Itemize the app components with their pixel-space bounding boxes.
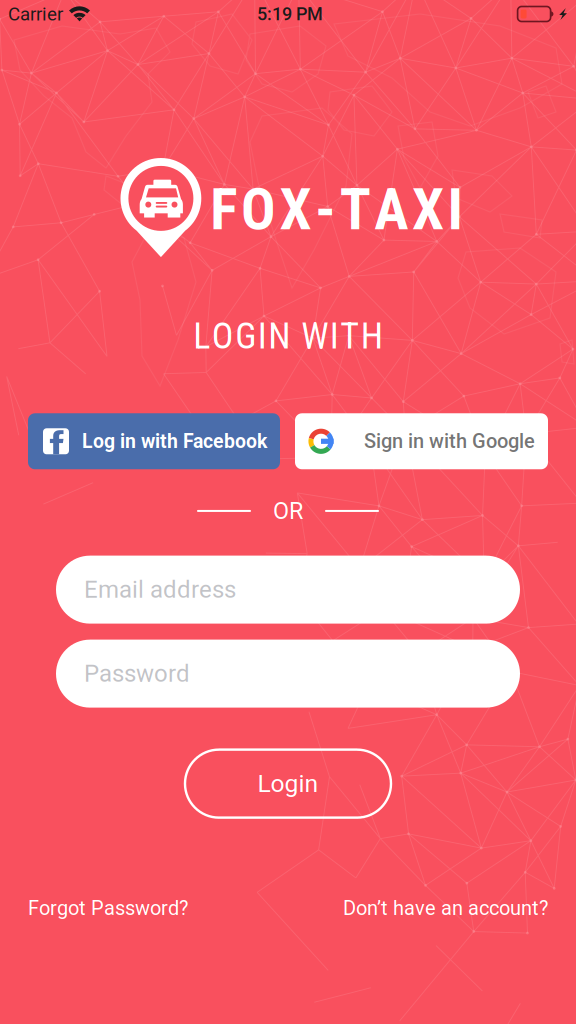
staticText: OR — [273, 497, 303, 525]
staticText: I — [447, 176, 462, 243]
staticText: X — [279, 176, 311, 243]
staticText: Forgot Password? — [28, 897, 188, 920]
staticText: Log in with Facebook — [82, 430, 267, 453]
staticText: N — [268, 315, 290, 357]
staticText: H — [361, 315, 383, 357]
staticText: F — [210, 176, 237, 243]
staticText: W — [301, 315, 328, 357]
staticText: T — [340, 176, 371, 243]
staticText: I — [330, 315, 339, 357]
staticText: Sign in with Google — [364, 430, 535, 453]
button[interactable]: Don’t have an account? — [343, 897, 548, 920]
staticText: I — [258, 315, 267, 357]
staticText: L — [193, 315, 210, 357]
staticText: O — [241, 176, 276, 243]
staticText: Don’t have an account? — [343, 897, 548, 920]
button[interactable]: Login — [185, 750, 391, 818]
staticText: Carrier — [8, 3, 63, 25]
staticText: Password — [84, 660, 190, 688]
button[interactable]: Log in with Facebook — [28, 413, 280, 469]
staticText: 5:19 PM — [257, 3, 323, 25]
staticText: T — [340, 315, 359, 357]
staticText — [292, 315, 300, 357]
staticText: O — [212, 315, 234, 357]
staticText: A — [374, 176, 408, 243]
staticText: Email address — [84, 576, 236, 604]
button[interactable]: Sign in with Google — [295, 413, 548, 469]
staticText: X — [412, 176, 444, 243]
button[interactable]: Password — [56, 640, 520, 708]
staticText: Login — [257, 769, 318, 798]
staticText: - — [315, 176, 336, 243]
staticText: G — [235, 315, 256, 357]
button[interactable]: Email address — [56, 556, 520, 624]
button[interactable]: Forgot Password? — [28, 897, 188, 920]
